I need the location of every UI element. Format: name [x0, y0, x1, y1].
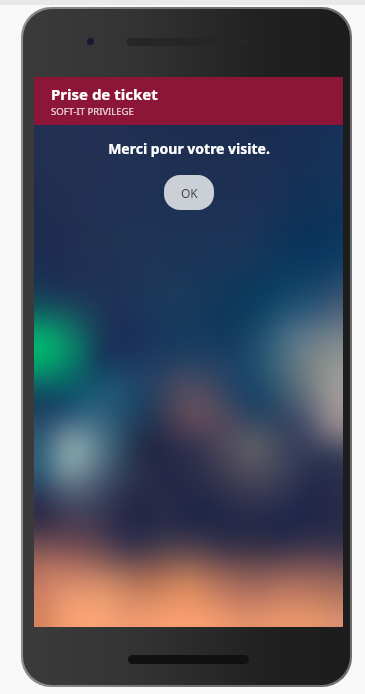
button[interactable]: Prise de ticket [34, 77, 343, 125]
staticText: SOFT-IT PRIVILEGE [51, 105, 134, 118]
staticText: OK [181, 185, 198, 201]
button[interactable]: OK [164, 175, 214, 210]
staticText: Prise de ticket [51, 84, 158, 104]
staticText: Merci pour votre visite. [108, 139, 270, 158]
